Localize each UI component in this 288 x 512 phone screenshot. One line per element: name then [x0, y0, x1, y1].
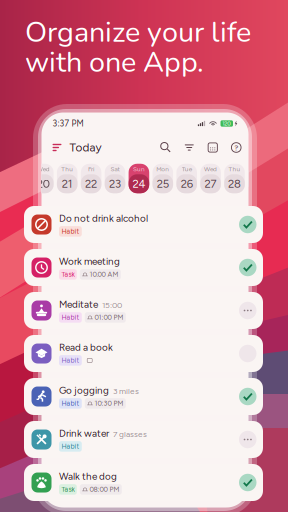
staticText: 20: [37, 177, 50, 190]
staticText: Task: [61, 485, 74, 494]
staticText: with one App.: [25, 43, 204, 82]
button[interactable]: Help: [224, 137, 248, 157]
staticText: Habit: [61, 356, 79, 365]
staticText: 08:00 PM: [89, 485, 119, 494]
button[interactable]: Drink water: [24, 421, 263, 458]
button[interactable]: Fri: [248, 164, 269, 193]
staticText: 7 glasses: [113, 429, 147, 439]
button[interactable]: Sat: [105, 164, 125, 193]
staticText: 10:30 PM: [94, 399, 123, 408]
staticText: Fri: [255, 165, 261, 173]
staticText: Meditate: [59, 298, 98, 310]
button[interactable]: Menu: [52, 137, 62, 157]
staticText: Drink water: [59, 427, 109, 439]
staticText: Task: [61, 270, 74, 279]
button[interactable]: Go jogging: [24, 378, 263, 415]
button[interactable]: Thu: [57, 164, 77, 193]
staticText: Thu: [228, 165, 240, 173]
button[interactable]: Mon: [152, 164, 173, 193]
button[interactable]: Calendar: [201, 137, 224, 157]
button[interactable]: Wed: [200, 164, 221, 193]
staticText: Habit: [61, 227, 79, 236]
staticText: Habit: [61, 313, 79, 322]
button[interactable]: Sun: [129, 164, 149, 193]
staticText: Wed: [204, 165, 217, 173]
staticText: Organize your life: [25, 13, 251, 52]
staticText: Today: [69, 140, 101, 155]
button[interactable]: Wed: [33, 164, 54, 193]
staticText: Sun: [133, 165, 145, 173]
staticText: Go jogging: [59, 384, 109, 396]
button[interactable]: Thu: [224, 164, 245, 193]
staticText: Wed: [37, 165, 50, 173]
staticText: Thu: [61, 165, 73, 173]
staticText: 28: [228, 177, 241, 190]
staticText: Sat: [110, 165, 119, 173]
button[interactable]: Read a book: [24, 335, 263, 372]
button[interactable]: Work meeting: [24, 249, 263, 286]
staticText: 25: [157, 177, 169, 190]
staticText: Walk the dog: [59, 470, 117, 482]
staticText: Mon: [156, 165, 169, 173]
staticText: Fri: [88, 165, 94, 173]
button[interactable]: Today: [62, 137, 101, 157]
staticText: Read a book: [59, 341, 113, 353]
staticText: 01:00 PM: [94, 313, 123, 322]
staticText: ?: [234, 142, 238, 152]
staticText: 22: [85, 177, 97, 190]
staticText: 23: [109, 177, 121, 190]
staticText: Work meeting: [59, 255, 120, 267]
staticText: Do not drink alcohol: [59, 212, 148, 224]
staticText: 26: [181, 177, 193, 190]
staticText: 10.00 AM: [89, 270, 118, 279]
staticText: 24: [132, 177, 145, 190]
button[interactable]: Meditate: [24, 292, 263, 329]
staticText: 21: [62, 177, 73, 190]
button[interactable]: Filter: [177, 137, 201, 157]
button[interactable]: Walk the dog: [24, 464, 263, 501]
staticText: Tue: [182, 165, 192, 173]
button[interactable]: Tue: [176, 164, 197, 193]
staticText: 120: [222, 120, 231, 127]
button[interactable]: Do not drink alcohol: [24, 206, 263, 243]
staticText: 29: [252, 177, 264, 190]
staticText: Habit: [61, 399, 79, 408]
staticText: 3 miles: [113, 386, 139, 396]
button[interactable]: Fri: [81, 164, 101, 193]
staticText: 27: [205, 177, 217, 190]
staticText: 15:00: [102, 300, 122, 310]
staticText: Habit: [61, 442, 79, 451]
staticText: 3:37 PM: [52, 118, 83, 129]
button[interactable]: Search: [154, 137, 177, 157]
